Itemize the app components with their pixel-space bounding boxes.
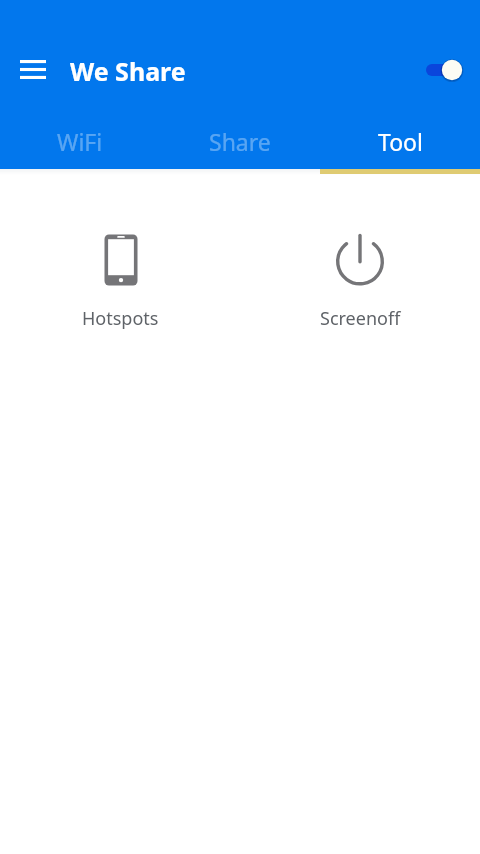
staticText: Share [209,126,271,157]
button[interactable]: Open navigation menu [9,45,57,93]
staticText: Tool [378,126,423,157]
staticText: Screenoff [320,306,401,331]
button[interactable]: WiFi [0,112,160,169]
button[interactable]: Tool [320,112,480,169]
staticText: We Share [70,54,186,88]
button[interactable]: Hotspots [0,202,240,355]
button[interactable]: Share [160,112,320,169]
staticText: Hotspots [82,306,159,331]
button[interactable]: Screenoff [240,202,480,355]
button[interactable]: Enable sharing [416,48,468,92]
staticText: WiFi [57,126,103,157]
